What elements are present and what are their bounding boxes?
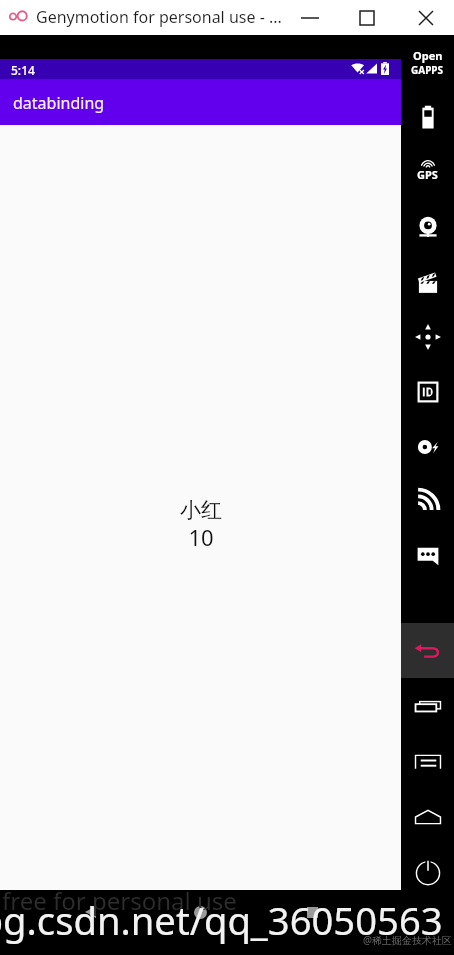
button[interactable]: Video recording <box>401 256 454 310</box>
button[interactable]: Power <box>401 845 454 899</box>
button[interactable]: Home <box>178 890 222 934</box>
staticText: GPS <box>417 167 438 182</box>
button[interactable]: Close <box>403 0 448 35</box>
button[interactable]: Rotate <box>401 310 454 364</box>
staticText: databinding <box>13 92 105 114</box>
button[interactable]: Network <box>401 473 454 527</box>
button[interactable]: Minimize <box>287 0 332 35</box>
button[interactable]: Recents <box>290 890 334 934</box>
button[interactable]: Open GAPPS <box>401 48 454 77</box>
button[interactable]: Phone and SMS <box>401 529 454 583</box>
staticText: Open <box>413 48 443 63</box>
button[interactable]: Maximize <box>344 0 389 35</box>
staticText: 小红 <box>180 497 222 523</box>
button[interactable]: Camera <box>401 201 454 255</box>
button[interactable]: GPS <box>401 144 454 198</box>
button[interactable]: Back <box>401 624 454 678</box>
staticText: 5:14 <box>11 62 35 78</box>
staticText: 10 <box>188 522 214 552</box>
button[interactable]: Menu <box>401 735 454 789</box>
button[interactable]: Disk IO <box>401 420 454 474</box>
button[interactable]: Home <box>401 790 454 844</box>
button[interactable]: Back <box>68 890 112 934</box>
button[interactable]: Recent apps <box>401 679 454 733</box>
staticText: Genymotion for personal use - ... <box>36 6 282 28</box>
button[interactable]: Identifiers <box>401 365 454 419</box>
staticText: @稀土掘金技术社区 <box>363 933 452 947</box>
staticText: og.csdn.net/qq_36050563 <box>0 894 443 946</box>
staticText: GAPPS <box>411 63 444 77</box>
staticText: free for personal use <box>2 884 237 917</box>
button[interactable]: Battery <box>401 90 454 144</box>
